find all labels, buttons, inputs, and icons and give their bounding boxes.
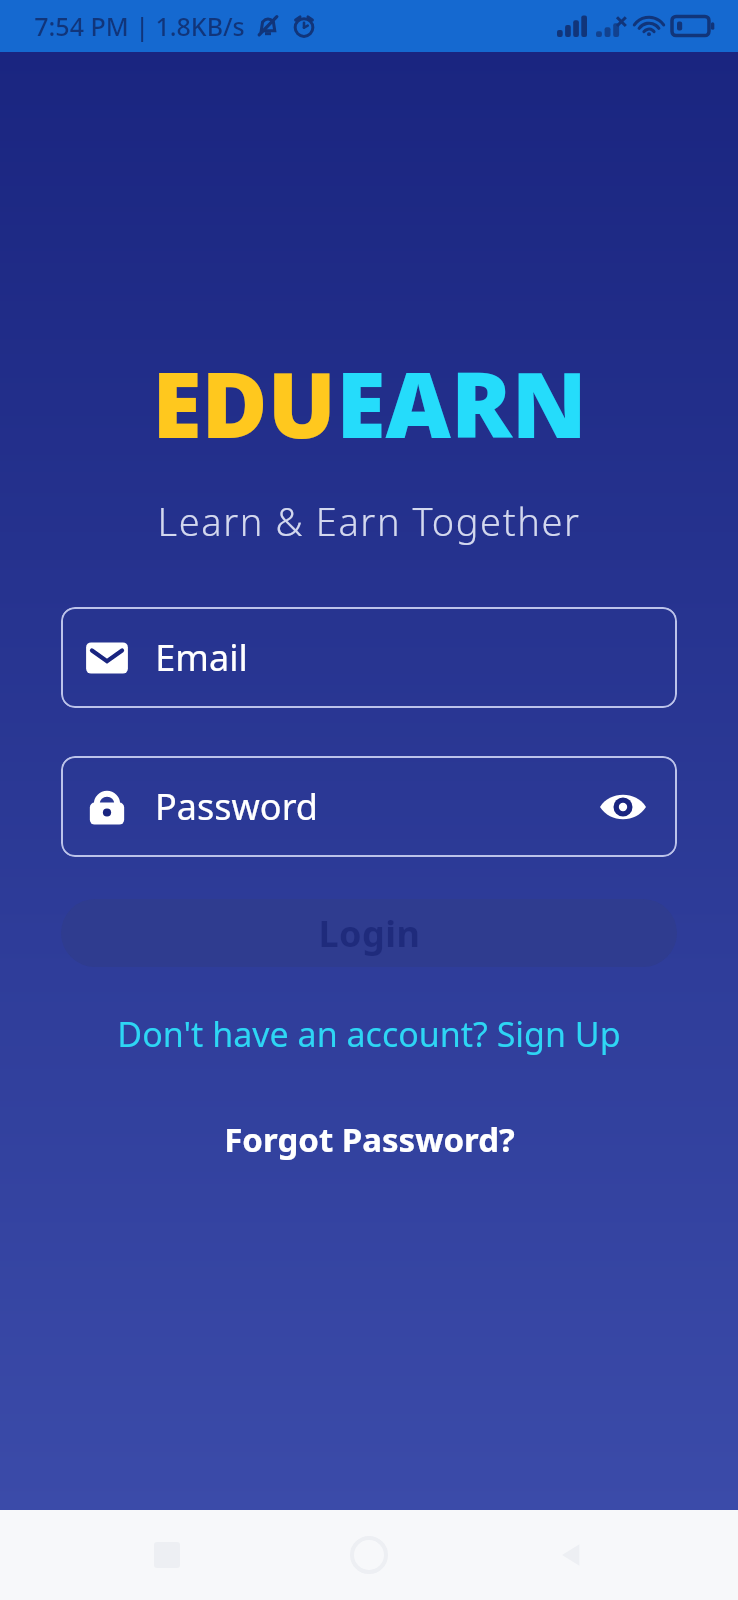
staticText: Learn & Earn Together: [157, 495, 581, 547]
staticText: Don't have an account? Sign Up: [117, 1011, 621, 1057]
staticText: EARN: [336, 342, 587, 465]
button[interactable]: Login: [61, 899, 677, 967]
button[interactable]: Forgot Password?: [212, 1111, 527, 1168]
staticText: EDU: [152, 342, 336, 465]
button[interactable]: Show password: [595, 779, 651, 835]
button[interactable]: Recents: [140, 1528, 194, 1582]
button[interactable]: Don't have an account? Sign Up: [105, 1005, 633, 1063]
staticText: Forgot Password?: [224, 1117, 515, 1162]
button[interactable]: Password: [61, 756, 677, 857]
staticText: Login: [318, 909, 421, 958]
staticText: 7:54 PM | 1.8KB/s: [34, 9, 245, 43]
button[interactable]: Email: [61, 607, 677, 708]
staticText: Email: [155, 633, 248, 682]
button[interactable]: Home: [339, 1525, 399, 1585]
staticText: Password: [155, 782, 318, 831]
